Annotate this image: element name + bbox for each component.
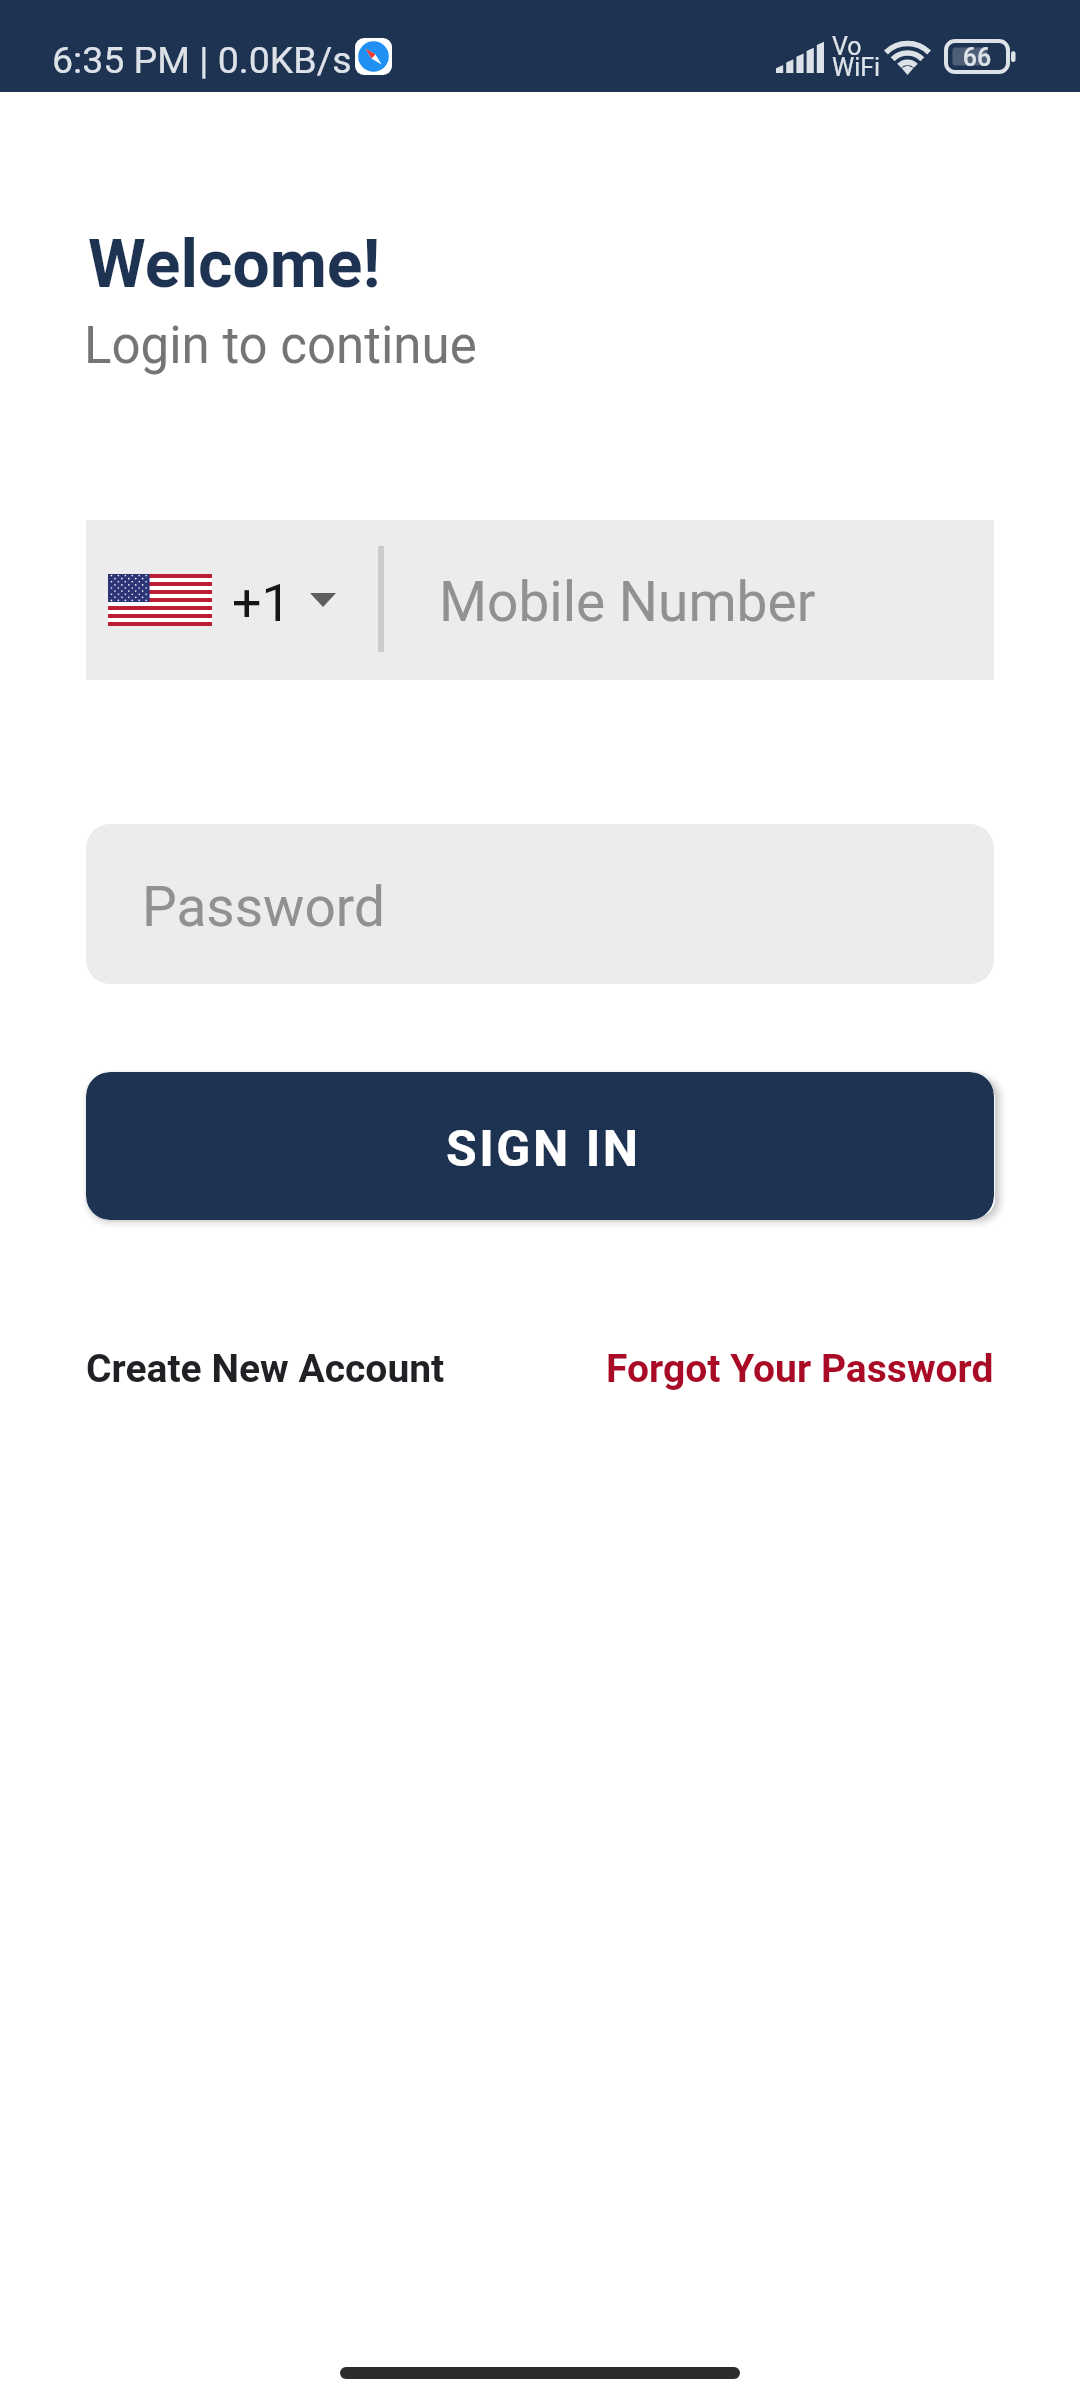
staticText: 6:35 PM | 0.0KB/s [52,38,352,82]
staticText: +1 [232,573,291,634]
staticText: WiFi [832,53,881,82]
button[interactable]: Password [86,824,994,984]
button[interactable]: SIGN IN [86,1072,994,1220]
button[interactable]: Select country code, United States +1 [86,520,374,680]
button[interactable]: Forgot Your Password [606,1346,994,1392]
other: Network speed indicator [355,38,392,75]
staticText: Login to continue [84,316,477,376]
staticText: Vo [832,32,862,61]
button[interactable]: Create New Account [86,1346,445,1392]
button[interactable]: Mobile Number [384,520,994,680]
staticText: Mobile Number [439,570,816,634]
staticText: Create New Account [86,1346,445,1392]
staticText: 66 [946,43,1008,72]
staticText: Forgot Your Password [606,1346,994,1392]
staticText: SIGN IN [446,1120,641,1179]
staticText: Welcome! [88,226,381,303]
staticText: Password [142,875,385,939]
